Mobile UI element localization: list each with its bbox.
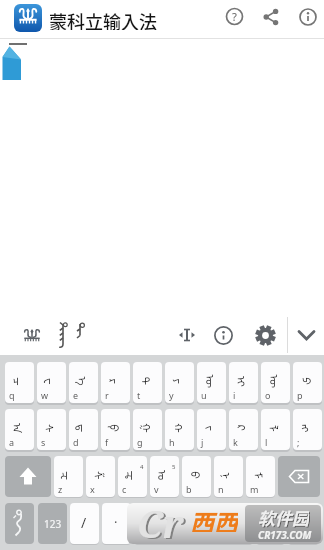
- staticText: b: [186, 483, 192, 495]
- staticText: ᠥ: [266, 374, 285, 388]
- staticText: ?: [232, 9, 237, 24]
- button[interactable]: [23, 328, 41, 346]
- staticText: ᠼ: [123, 470, 142, 480]
- button[interactable]: [214, 326, 233, 345]
- staticText: ᠩ: [298, 424, 317, 433]
- staticText: e: [73, 389, 79, 401]
- button[interactable]: ᠥ: [261, 362, 290, 403]
- staticText: n: [218, 483, 224, 495]
- button[interactable]: [256, 503, 285, 544]
- staticText: ᠱ: [91, 471, 110, 480]
- button[interactable]: ᠶ: [165, 362, 194, 403]
- button[interactable]: ᠨ: [214, 456, 243, 497]
- staticText: ᠳ: [74, 424, 93, 433]
- staticText: ᠡ: [74, 376, 93, 386]
- staticText: 123: [44, 517, 62, 531]
- button[interactable]: [74, 322, 86, 340]
- button[interactable]: [134, 503, 253, 544]
- staticText: i: [233, 389, 236, 401]
- button[interactable]: 123: [38, 503, 67, 544]
- button[interactable]: ᠱ: [86, 456, 115, 497]
- button[interactable]: ᠸ: [37, 362, 66, 403]
- staticText: ᠭ: [138, 423, 157, 433]
- staticText: Cr: [137, 503, 184, 538]
- button[interactable]: ᠳ: [69, 409, 98, 450]
- button[interactable]: ᠭ: [133, 409, 162, 450]
- staticText: ᠨ: [219, 472, 238, 479]
- staticText: r: [105, 389, 109, 401]
- button[interactable]: ᠴ: [5, 362, 34, 403]
- button[interactable]: [299, 8, 317, 26]
- staticText: ·: [114, 513, 118, 531]
- staticText: l: [265, 436, 268, 448]
- button[interactable]: [5, 503, 34, 544]
- button[interactable]: ᠺ: [229, 409, 258, 450]
- staticText: a: [9, 436, 15, 448]
- staticText: CR173.COM: [258, 528, 312, 542]
- staticText: o: [265, 389, 271, 401]
- button[interactable]: ᠽ: [54, 456, 83, 497]
- button[interactable]: [102, 503, 131, 544]
- staticText: ᠺ: [234, 425, 253, 432]
- button[interactable]: [56, 322, 70, 350]
- button[interactable]: ᠹ: [101, 409, 130, 450]
- button[interactable]: [70, 503, 99, 544]
- button[interactable]: ?: [226, 8, 243, 25]
- button[interactable]: [14, 4, 42, 32]
- button[interactable]: ᠲ: [133, 362, 162, 403]
- staticText: ᠹ: [106, 424, 125, 432]
- button[interactable]: ᠵ: [197, 409, 226, 450]
- staticText: t: [137, 389, 141, 401]
- staticText: s: [41, 436, 46, 448]
- button[interactable]: ᠩ: [293, 409, 322, 450]
- staticText: ᠢ: [234, 376, 253, 387]
- staticText: u: [201, 389, 207, 401]
- button[interactable]: ᠦ: [197, 362, 226, 403]
- button[interactable]: ᠬ: [165, 409, 194, 450]
- staticText: ᠯ: [266, 425, 285, 432]
- staticText: 5: [172, 463, 176, 471]
- button[interactable]: ᠪ: [182, 456, 211, 497]
- staticText: /: [81, 513, 87, 532]
- button[interactable]: [255, 325, 276, 346]
- staticText: ᠰ: [42, 424, 61, 433]
- staticText: h: [169, 436, 175, 448]
- staticText: 软件园: [259, 506, 310, 528]
- button[interactable]: ᠤ: [150, 456, 179, 497]
- button[interactable]: ᠯ: [261, 409, 290, 450]
- staticText: z: [58, 483, 63, 495]
- button[interactable]: ᠫ: [293, 362, 322, 403]
- staticText: j: [201, 436, 204, 448]
- staticText: y: [169, 389, 174, 401]
- staticText: k: [233, 436, 238, 448]
- staticText: f: [105, 436, 109, 448]
- button[interactable]: [288, 503, 319, 544]
- button[interactable]: [5, 456, 51, 497]
- button[interactable]: [278, 456, 320, 497]
- staticText: m: [250, 483, 259, 495]
- staticText: ᠲ: [138, 377, 157, 386]
- button[interactable]: ᠠ: [5, 409, 34, 450]
- staticText: ᠽ: [59, 471, 78, 480]
- button[interactable]: [296, 328, 317, 343]
- button[interactable]: ᠢ: [229, 362, 258, 403]
- button[interactable]: ᠮ: [246, 456, 275, 497]
- staticText: p: [297, 389, 303, 401]
- staticText: ;: [297, 436, 300, 448]
- staticText: ᠤ: [155, 470, 174, 481]
- button[interactable]: ᠼ: [118, 456, 147, 497]
- button[interactable]: [262, 8, 280, 26]
- staticText: ᠫ: [298, 377, 317, 385]
- staticText: ᠮ: [251, 472, 270, 479]
- staticText: 4: [140, 463, 144, 471]
- staticText: x: [90, 483, 95, 495]
- staticText: 软件园: [258, 505, 309, 527]
- staticText: ᠴ: [10, 377, 29, 386]
- staticText: ᠵ: [202, 425, 221, 431]
- button[interactable]: ᠰ: [37, 409, 66, 450]
- button[interactable]: ᠡ: [69, 362, 98, 403]
- staticText: ᠦ: [202, 374, 221, 388]
- button[interactable]: [177, 327, 197, 343]
- staticText: Cr: [139, 503, 186, 539]
- button[interactable]: ᠷ: [101, 362, 130, 403]
